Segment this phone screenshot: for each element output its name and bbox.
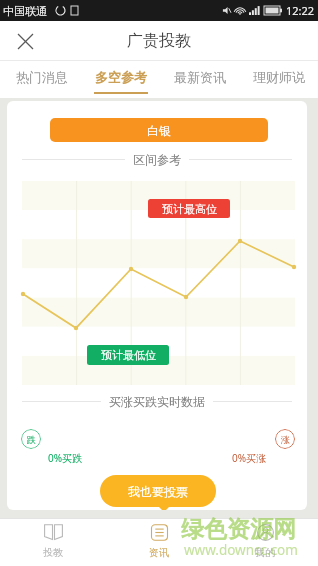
staticText: 多空参考 xyxy=(95,69,147,85)
staticText: 白银 xyxy=(147,123,171,138)
staticText: 投教 xyxy=(43,546,63,559)
staticText: 热门消息 xyxy=(16,69,68,85)
staticText: 跌 xyxy=(27,434,36,445)
button[interactable]: 理财师说 xyxy=(239,61,318,98)
staticText: 0%买涨 xyxy=(232,451,267,465)
staticText: 涨 xyxy=(281,434,290,445)
staticText: 0%买跌 xyxy=(48,451,83,465)
staticText: 我的 xyxy=(255,546,275,559)
staticText: 广贵投教 xyxy=(127,31,191,51)
button[interactable]: 资讯 xyxy=(106,519,212,566)
button[interactable]: 我的 xyxy=(212,519,318,566)
button[interactable]: 跌 xyxy=(21,429,41,449)
staticText: 中国联通 xyxy=(3,4,47,18)
button[interactable]: Close xyxy=(5,21,45,61)
button[interactable]: 我也要投票 xyxy=(100,475,216,507)
staticText: 预计最高位 xyxy=(162,202,217,216)
staticText: 绿色资源网 xyxy=(181,515,296,544)
staticText: 12:22 xyxy=(286,3,315,18)
staticText: 买涨买跌实时数据 xyxy=(109,394,205,409)
button[interactable]: 涨 xyxy=(275,429,295,449)
staticText: 我也要投票 xyxy=(128,484,188,499)
button[interactable]: 热门消息 xyxy=(2,61,81,98)
staticText: 最新资讯 xyxy=(174,69,226,85)
button[interactable]: 最新资讯 xyxy=(160,61,239,98)
button[interactable]: 投教 xyxy=(0,519,106,566)
staticText: 理财师说 xyxy=(253,69,305,85)
staticText: 区间参考 xyxy=(133,152,181,167)
button[interactable]: 白银 xyxy=(50,118,268,142)
staticText: www.downcc.com xyxy=(184,541,298,559)
staticText: 预计最低位 xyxy=(101,348,156,362)
button[interactable]: 多空参考 xyxy=(81,61,160,98)
staticText: 资讯 xyxy=(149,546,169,559)
